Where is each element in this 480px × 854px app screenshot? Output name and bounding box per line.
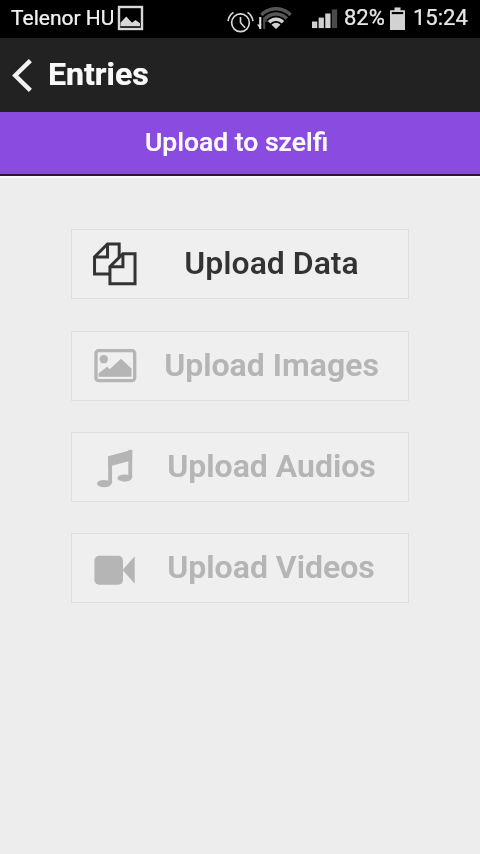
button[interactable]: Upload Images <box>71 331 409 401</box>
button[interactable]: Upload Audios <box>71 432 409 502</box>
staticText: 15:24 <box>413 5 468 31</box>
button[interactable]: Upload to szelfi <box>0 112 480 174</box>
staticText: Upload Audios <box>167 447 376 485</box>
staticText: Upload Videos <box>167 548 375 586</box>
staticText: Upload to szelfi <box>145 126 329 157</box>
button[interactable]: Upload Videos <box>71 533 409 603</box>
button[interactable]: Upload Data <box>71 229 409 299</box>
staticText: Telenor HU <box>11 6 115 31</box>
staticText: Entries <box>48 55 149 93</box>
staticText: Upload Data <box>184 244 359 282</box>
staticText: 82% <box>344 5 385 31</box>
staticText: Upload Images <box>164 346 379 384</box>
button[interactable]: Back <box>0 38 44 112</box>
